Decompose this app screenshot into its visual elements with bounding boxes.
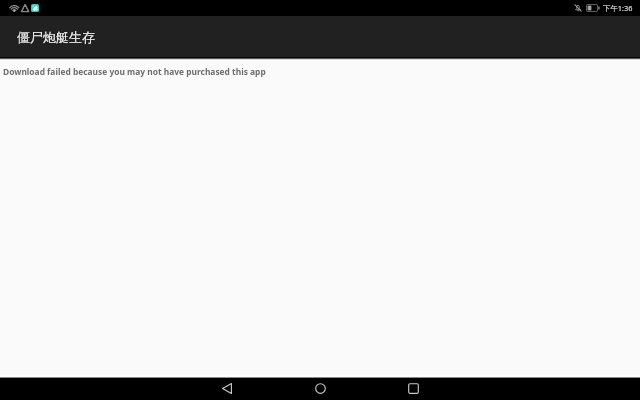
button[interactable]: Back	[203, 377, 251, 399]
staticText: 下午1:36	[603, 3, 633, 13]
staticText: Download failed because you may not have…	[3, 66, 266, 77]
button[interactable]: Home	[296, 377, 344, 399]
button[interactable]: Recent apps	[389, 377, 437, 399]
staticText: 僵尸炮艇生存	[17, 29, 95, 45]
